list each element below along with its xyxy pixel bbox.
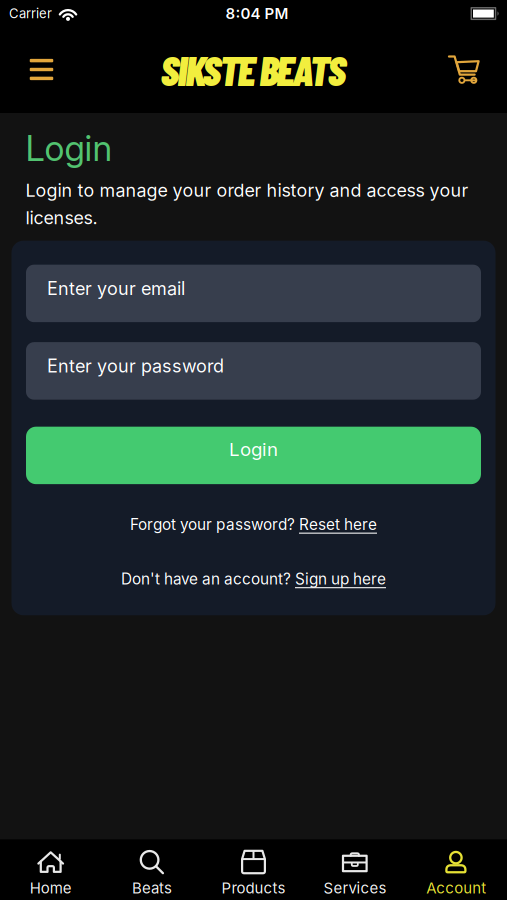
staticText: Forgot your password? Reset here [130,515,377,534]
button[interactable]: Account [406,850,507,897]
button[interactable]: Forgot your password? Reset here [130,515,377,534]
staticText: Beats [132,879,172,897]
staticText: Home [30,879,72,897]
staticText: Carrier [9,6,52,21]
staticText: Login [25,127,112,169]
button[interactable]: Cart [448,54,480,85]
staticText: Don't have an account? Sign up here [121,570,386,588]
button[interactable]: Services [304,850,406,897]
staticText: Products [221,879,285,897]
staticText: Login [229,438,278,460]
button[interactable]: Beats [101,850,203,897]
staticText: 8:04 PM [225,4,288,23]
staticText: Enter your email [47,277,185,299]
staticText: Enter your password [47,355,224,377]
button[interactable]: Login [26,427,481,484]
button[interactable]: Don't have an account? Sign up here [121,570,386,588]
staticText: Services [323,879,386,897]
button[interactable]: Enter your password [26,342,481,400]
button[interactable]: Products [203,850,304,897]
staticText: SIKSTE BEATS [160,45,346,94]
staticText: Login to manage your order history and a… [25,179,468,229]
staticText: Account [426,879,486,897]
button[interactable]: Enter your email [26,265,481,322]
button[interactable]: Menu [30,59,53,80]
button[interactable]: Home [0,850,101,897]
